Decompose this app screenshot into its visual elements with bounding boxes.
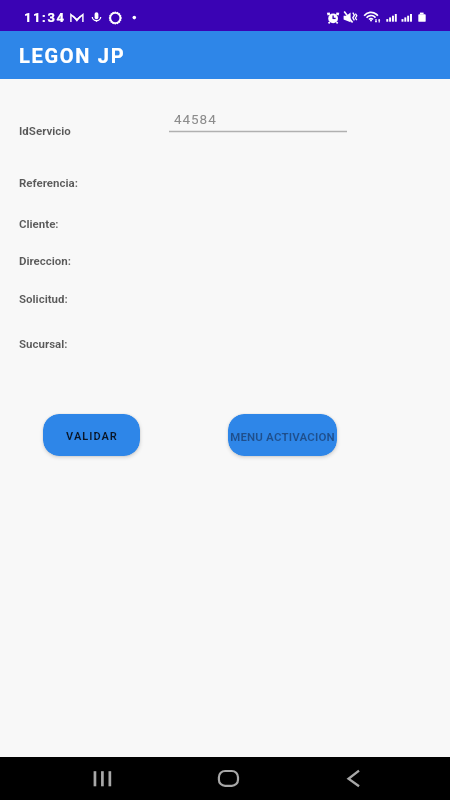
staticText: IdServicio [19,124,71,137]
staticText: Cliente: [19,217,59,230]
staticText: MENU ACTIVACION [230,430,335,443]
button[interactable]: MENU ACTIVACION [228,414,337,456]
button[interactable]: Home [197,757,257,800]
button[interactable]: VALIDAR [43,414,140,456]
staticText: Sucursal: [19,337,68,350]
staticText: Referencia: [19,176,78,189]
button[interactable]: Recent apps [71,757,131,800]
staticText: LEGON JP [19,44,126,67]
staticText: Solicitud: [19,292,68,305]
staticText: 44584 [174,111,217,127]
button[interactable]: Back [323,757,383,800]
staticText: 11:34 [24,10,66,25]
staticText: VALIDAR [66,430,118,443]
staticText: Direccion: [19,254,72,267]
button[interactable]: 44584 [169,106,347,133]
